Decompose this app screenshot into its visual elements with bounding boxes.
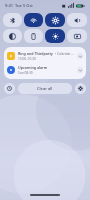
button[interactable]: Device	[24, 29, 43, 43]
staticText: Upcoming alarm	[18, 65, 48, 70]
staticText: 9:41 Tue 5 Oct	[5, 3, 33, 8]
button[interactable]: Flashlight	[45, 29, 65, 43]
button[interactable]: Settings	[75, 83, 86, 94]
button[interactable]: Ring and Thirdparty	[4, 49, 86, 63]
staticText: 10:00–10:30	[18, 57, 36, 61]
button[interactable]: Expand	[77, 53, 83, 59]
button[interactable]: Settings	[45, 13, 65, 27]
button[interactable]: Upcoming alarm	[4, 63, 86, 77]
button[interactable]: Clear all	[18, 83, 72, 94]
button[interactable]: Wi-Fi	[24, 13, 43, 27]
button[interactable]: Expand	[77, 67, 83, 73]
staticText: Clear all	[37, 86, 53, 91]
button[interactable]: Notification history	[4, 83, 15, 94]
button[interactable]: Screen record	[67, 29, 87, 43]
staticText: • Calendar • Th	[55, 52, 75, 56]
staticText: Sun 08:30	[18, 71, 33, 75]
staticText: Ring and Thirdparty	[18, 51, 53, 56]
button[interactable]: Volume	[67, 13, 87, 27]
button[interactable]: Dark theme	[3, 29, 22, 43]
button[interactable]: Bluetooth	[3, 13, 22, 27]
